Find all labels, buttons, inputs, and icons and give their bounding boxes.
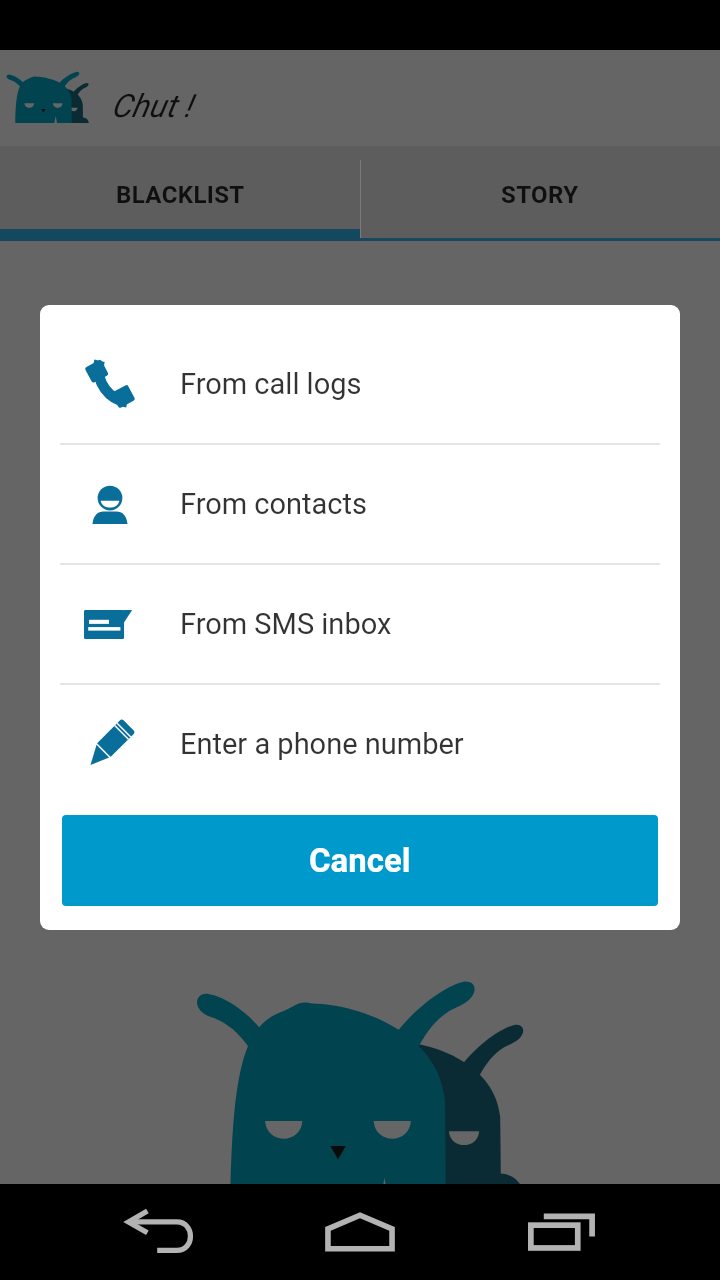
button[interactable]: STORY xyxy=(360,146,720,241)
staticText: Cancel xyxy=(309,841,411,880)
button[interactable]: From SMS inbox xyxy=(40,565,680,683)
staticText: Chut ! xyxy=(111,87,192,125)
staticText: From SMS inbox xyxy=(180,607,392,641)
button[interactable]: Recents xyxy=(492,1184,632,1280)
button[interactable]: BLACKLIST xyxy=(0,146,360,241)
staticText: Enter a phone number xyxy=(180,727,464,761)
staticText: BLACKLIST xyxy=(116,181,245,209)
button[interactable]: From contacts xyxy=(40,445,680,563)
button[interactable]: Cancel xyxy=(62,815,658,906)
button[interactable]: Home xyxy=(290,1184,430,1280)
button[interactable]: Back xyxy=(90,1184,230,1280)
staticText: STORY xyxy=(501,181,579,209)
button[interactable]: Enter a phone number xyxy=(40,685,680,803)
staticText: From contacts xyxy=(180,487,367,521)
button[interactable]: From call logs xyxy=(40,325,680,443)
staticText: From call logs xyxy=(180,367,362,401)
